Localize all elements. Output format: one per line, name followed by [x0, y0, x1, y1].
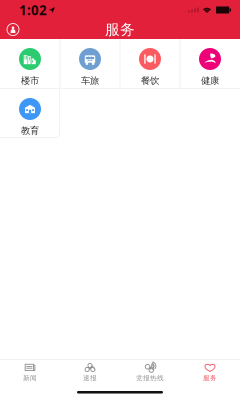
staticText: 1:02 — [19, 1, 47, 19]
staticText: 健康 — [201, 75, 219, 86]
staticText: 服务 — [105, 20, 135, 38]
button[interactable]: 服务 — [180, 360, 240, 384]
staticText: 楼市 — [21, 75, 39, 86]
button[interactable]: 党报热线 — [120, 360, 180, 384]
button[interactable]: 餐饮 — [120, 39, 179, 88]
staticText: 党报热线 — [136, 374, 164, 382]
staticText: 教育 — [21, 125, 39, 136]
staticText: 速报 — [83, 374, 97, 382]
button[interactable]: 教育 — [0, 89, 59, 138]
button[interactable]: 楼市 — [0, 39, 59, 88]
staticText: 服务 — [203, 374, 217, 382]
button[interactable]: 车旅 — [60, 39, 119, 88]
staticText: 新闻 — [23, 374, 37, 382]
button[interactable]: 速报 — [60, 360, 120, 384]
button[interactable]: 健康 — [180, 39, 239, 88]
button[interactable]: 新闻 — [0, 360, 60, 384]
staticText: 车旅 — [81, 75, 99, 86]
staticText: 餐饮 — [141, 75, 159, 86]
button[interactable]: Account — [0, 20, 26, 39]
